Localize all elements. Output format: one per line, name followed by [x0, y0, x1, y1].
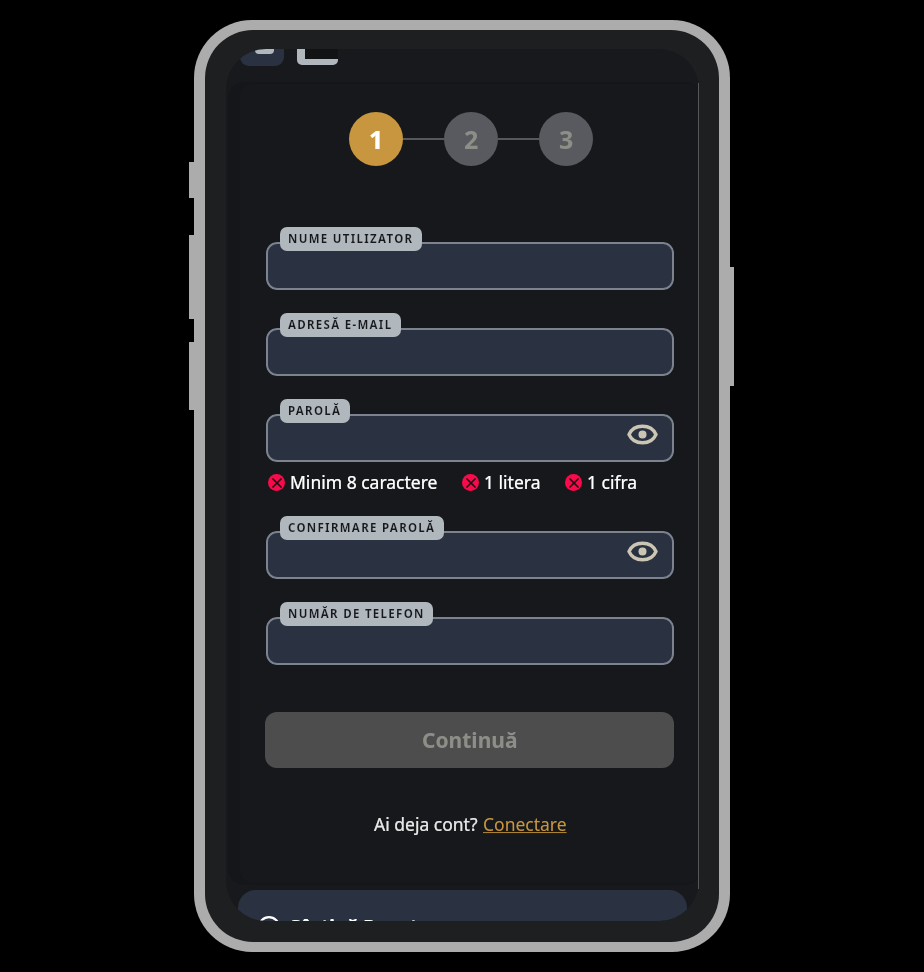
button[interactable]: Afișează parola — [266, 414, 674, 462]
button[interactable]: Conectare — [483, 812, 567, 836]
staticText: 1 — [369, 122, 384, 156]
staticText: CONFIRMARE PAROLĂ — [288, 520, 436, 536]
staticText: Continuă — [422, 726, 518, 755]
staticText: Conectare — [483, 812, 567, 836]
button[interactable] — [266, 617, 674, 665]
button[interactable]: Continuă — [265, 712, 674, 768]
staticText: 3 — [559, 122, 574, 156]
button[interactable]: Afișează parola — [627, 423, 658, 446]
staticText: 2 — [464, 122, 479, 156]
button[interactable]: Afișează parola — [266, 531, 674, 579]
button[interactable]: Pasul 3 — [539, 112, 593, 166]
staticText: ADRESĂ E-MAIL — [288, 317, 393, 333]
staticText: NUMĂR DE TELEFON — [288, 606, 425, 622]
staticText: Minim 8 caractere — [290, 470, 438, 494]
button[interactable]: Pasul 2 — [444, 112, 498, 166]
staticText: PAROLĂ — [288, 403, 342, 419]
staticText: Ai deja cont? — [374, 812, 483, 836]
staticText: 1 cifra — [587, 470, 638, 494]
staticText: Câștigă Puncte — [288, 914, 430, 921]
button[interactable]: Câștigă Puncte — [238, 890, 687, 921]
button[interactable]: Pasul 1 — [349, 112, 403, 166]
button[interactable] — [266, 328, 674, 376]
button[interactable] — [266, 242, 674, 290]
staticText: 1 litera — [484, 470, 541, 494]
staticText: NUME UTILIZATOR — [288, 231, 414, 247]
button[interactable]: Afișează parola — [627, 540, 658, 563]
